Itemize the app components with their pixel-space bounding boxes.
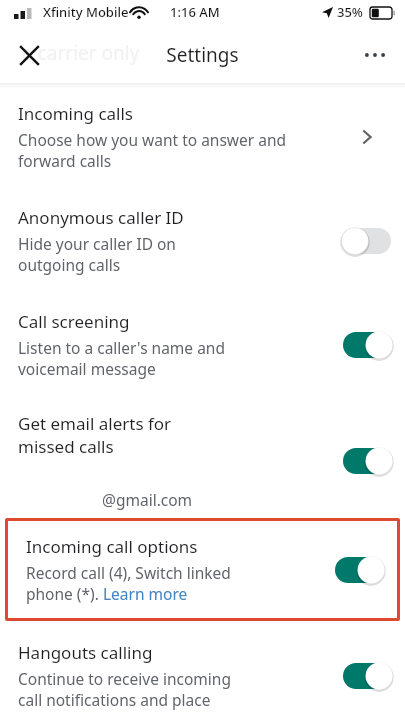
staticText: Listen to a caller's name and voicemail … (18, 337, 225, 380)
button[interactable]: Toggle on (331, 552, 387, 588)
button[interactable]: Learn more (103, 583, 188, 604)
staticText: Xfinity Mobile (43, 3, 129, 21)
button[interactable]: Incoming call options (8, 521, 397, 618)
staticText: Settings (166, 42, 239, 68)
button[interactable]: Get email alerts for missed calls (0, 400, 405, 518)
staticText: Call screening (18, 310, 130, 333)
button[interactable]: Toggle on (339, 327, 395, 363)
button[interactable]: Close (11, 37, 47, 73)
staticText: phone (*). (26, 583, 103, 604)
staticText: Get email alerts for missed calls (18, 412, 172, 458)
staticText: Incoming calls (18, 102, 133, 125)
staticText: Hide your caller ID on outgoing calls (18, 233, 176, 276)
button[interactable]: Toggle off (339, 223, 395, 259)
button[interactable]: Toggle on (339, 658, 395, 694)
button[interactable]: Incoming calls (0, 94, 405, 192)
staticText: Anonymous caller ID (18, 206, 184, 229)
staticText: Continue to receive incoming call notifi… (18, 668, 231, 710)
button[interactable]: Toggle on (339, 443, 395, 479)
button[interactable]: Open (347, 117, 387, 157)
button[interactable]: Call screening (0, 296, 405, 400)
staticText: 1:16 AM (170, 3, 220, 21)
staticText: @gmail.com (102, 489, 193, 510)
staticText: Choose how you want to answer and forwar… (18, 129, 287, 172)
button[interactable]: More options (355, 35, 395, 75)
button[interactable]: Anonymous caller ID (0, 192, 405, 296)
staticText: 35% (337, 3, 363, 21)
button[interactable]: Hangouts calling (0, 621, 405, 720)
staticText: Incoming call options (26, 535, 198, 558)
staticText: Record call (4), Switch linked (26, 562, 231, 583)
staticText: e carrier only (22, 40, 140, 66)
staticText: Hangouts calling (18, 641, 153, 664)
